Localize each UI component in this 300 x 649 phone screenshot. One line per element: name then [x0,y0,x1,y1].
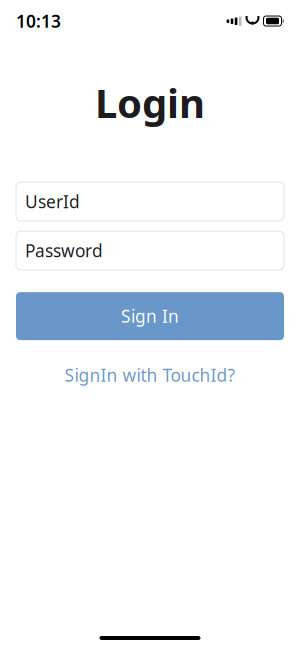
staticText: UserId [25,190,80,213]
button[interactable]: SignIn with TouchId? [16,360,284,390]
staticText: 10:13 [16,9,61,32]
button[interactable]: Sign In [16,292,284,340]
staticText: Sign In [121,305,179,328]
staticText: Login [95,76,205,129]
staticText: SignIn with TouchId? [64,364,235,387]
staticText: Password [25,239,103,262]
